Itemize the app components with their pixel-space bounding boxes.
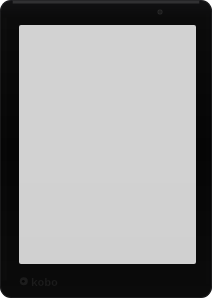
- staticText: kobo: [31, 274, 58, 289]
- button[interactable]: Kobo e-reader: [0, 0, 212, 298]
